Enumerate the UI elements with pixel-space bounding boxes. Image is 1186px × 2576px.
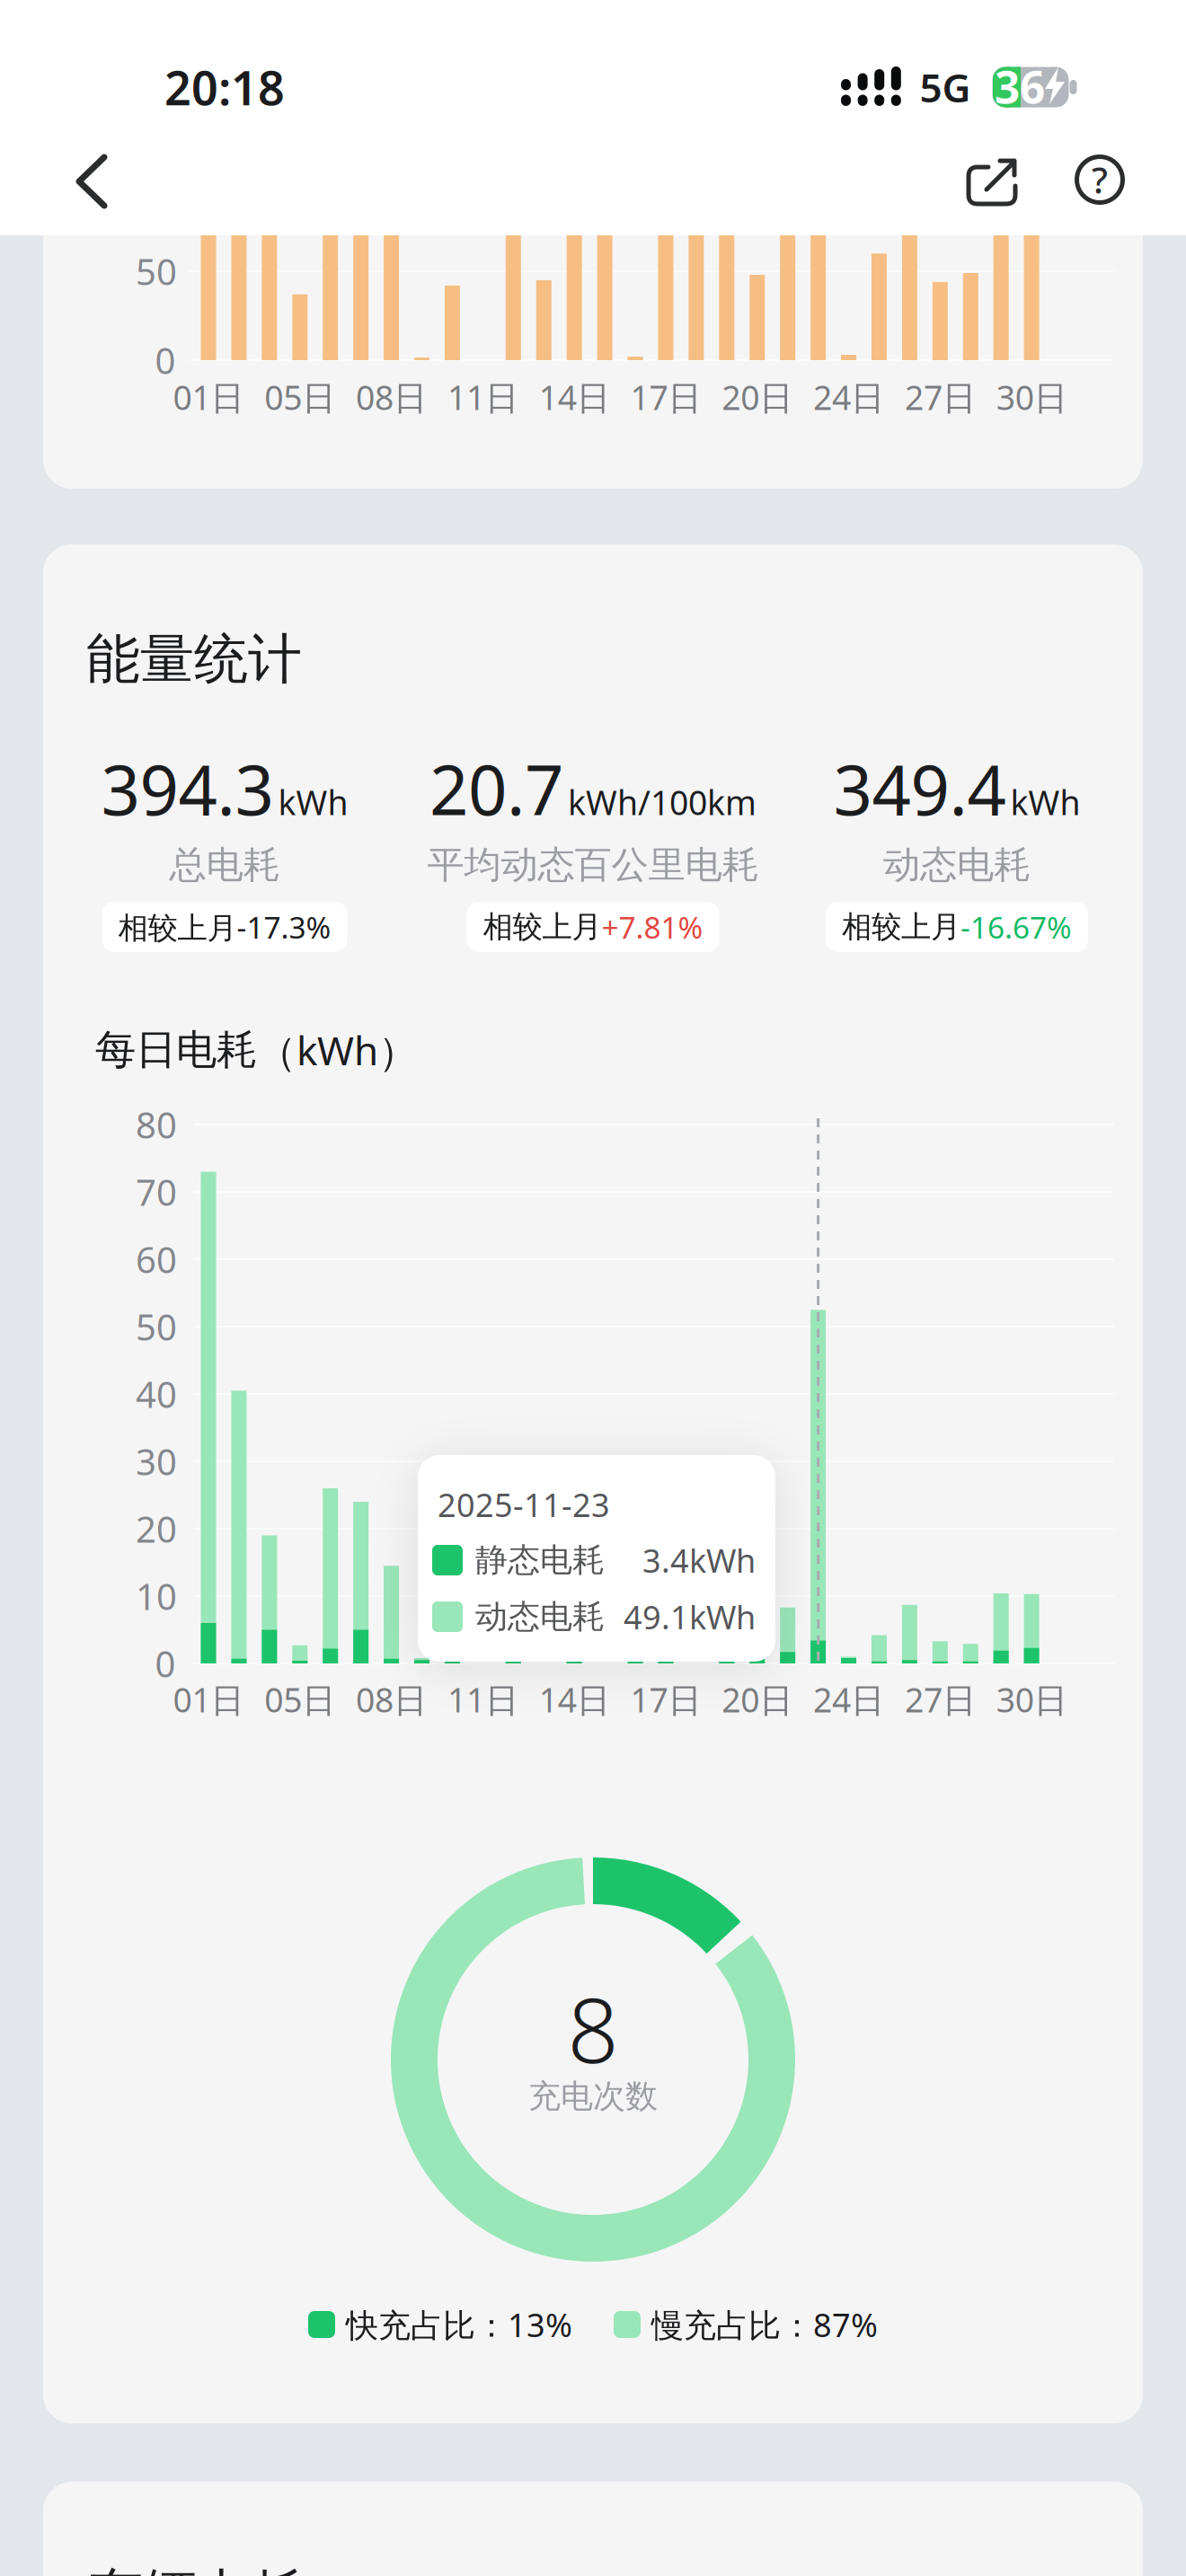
- staticText: 80: [136, 1101, 177, 1148]
- staticText: 17日: [630, 1677, 701, 1722]
- staticText: 27日: [905, 375, 976, 419]
- staticText: 17日: [630, 375, 701, 419]
- staticText: 05日: [264, 375, 335, 419]
- staticText: 10: [136, 1572, 177, 1620]
- staticText: 慢充占比：87%: [651, 2303, 878, 2346]
- staticText: -16.67%: [960, 907, 1072, 947]
- staticText: 3.4kWh: [642, 1539, 756, 1582]
- staticText: 08日: [356, 1677, 427, 1722]
- staticText: 相较上月-17.3%: [118, 907, 331, 947]
- staticText: 每日电耗: [95, 1025, 257, 1075]
- staticText: 相较上月: [842, 909, 960, 945]
- staticText: 相较上月: [483, 909, 602, 945]
- staticText: kWh: [278, 780, 348, 824]
- staticText: kWh: [1010, 780, 1080, 824]
- staticText: 36: [995, 57, 1045, 116]
- staticText: 50: [136, 247, 177, 295]
- staticText: 11日: [447, 1677, 518, 1722]
- staticText: 5G: [920, 61, 971, 113]
- staticText: 30: [136, 1437, 177, 1485]
- staticText: kWh/100km: [568, 780, 757, 824]
- staticText: 24日: [813, 1677, 884, 1722]
- staticText: 车辆电耗: [90, 2562, 305, 2576]
- button[interactable]: Back: [50, 132, 133, 231]
- staticText: 70: [136, 1168, 177, 1216]
- staticText: 14日: [539, 1677, 610, 1722]
- staticText: 05日: [264, 1677, 335, 1722]
- staticText: 0: [155, 1640, 176, 1687]
- staticText: 动态电耗: [475, 1597, 605, 1637]
- staticText: 49.1kWh: [624, 1595, 756, 1638]
- staticText: 快充占比：13%: [346, 2303, 572, 2346]
- staticText: 394.3: [101, 743, 274, 834]
- staticText: 50: [136, 1303, 177, 1350]
- staticText: 14日: [539, 375, 610, 419]
- staticText: 40: [136, 1370, 177, 1418]
- staticText: 静态电耗: [475, 1540, 605, 1580]
- staticText: （kWh）: [257, 1024, 418, 1076]
- staticText: 8: [567, 1968, 619, 2088]
- staticText: 充电次数: [528, 2077, 658, 2116]
- button[interactable]: Help: [1055, 130, 1145, 229]
- staticText: 27日: [905, 1677, 976, 1722]
- staticText: 24日: [813, 375, 884, 419]
- staticText: 30日: [996, 1677, 1067, 1722]
- staticText: 能量统计: [86, 626, 302, 692]
- staticText: 动态电耗: [883, 842, 1031, 888]
- staticText: 349.4: [833, 743, 1006, 834]
- staticText: 60: [136, 1235, 177, 1283]
- staticText: 20日: [722, 375, 793, 419]
- staticText: 20: [136, 1505, 177, 1553]
- staticText: 01日: [173, 375, 244, 419]
- staticText: 08日: [356, 375, 427, 419]
- staticText: +7.81%: [602, 907, 703, 947]
- staticText: 20.7: [429, 743, 563, 834]
- staticText: 总电耗: [169, 842, 280, 888]
- staticText: 2025-11-23: [438, 1483, 610, 1526]
- button[interactable]: Share: [943, 130, 1041, 229]
- staticText: ?: [1092, 156, 1108, 203]
- staticText: 01日: [173, 1677, 244, 1722]
- staticText: 0: [155, 336, 176, 384]
- staticText: 平均动态百公里电耗: [427, 842, 759, 888]
- staticText: 20:18: [164, 56, 285, 118]
- staticText: 11日: [447, 375, 518, 419]
- staticText: 30日: [996, 375, 1067, 419]
- staticText: 20日: [722, 1677, 793, 1722]
